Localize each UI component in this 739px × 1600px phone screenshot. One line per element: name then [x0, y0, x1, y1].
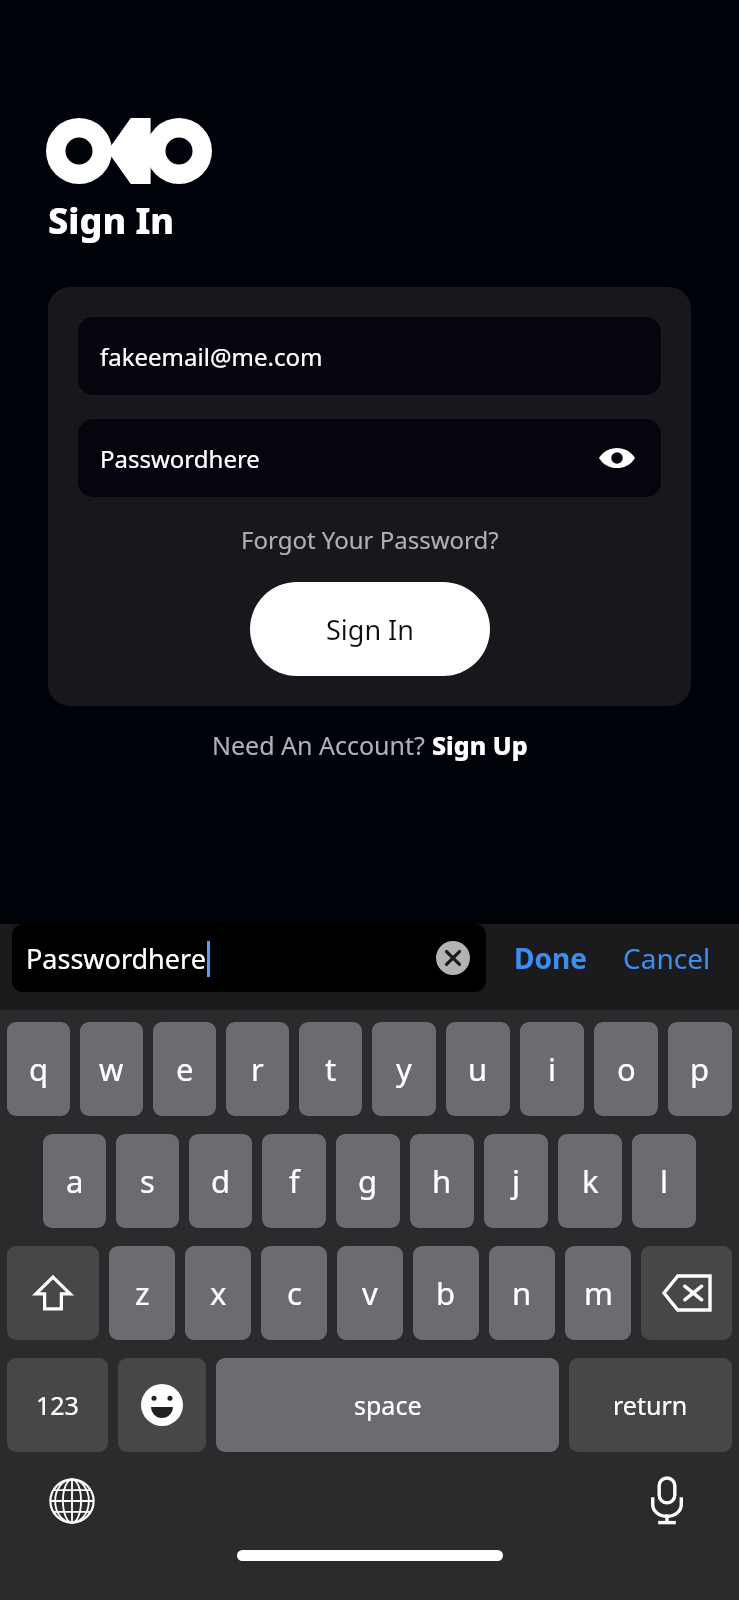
staticText: c: [287, 1272, 302, 1314]
staticText: g: [358, 1160, 378, 1202]
button[interactable]: m: [565, 1246, 631, 1340]
staticText: v: [362, 1272, 378, 1314]
staticText: r: [251, 1048, 264, 1090]
button[interactable]: Passwordhere: [12, 924, 486, 992]
staticText: Forgot Your Password?: [241, 523, 499, 556]
staticText: y: [396, 1048, 412, 1090]
staticText: Need An Account?: [212, 728, 432, 762]
button[interactable]: t: [299, 1022, 362, 1116]
button[interactable]: i: [520, 1022, 584, 1116]
button[interactable]: o: [594, 1022, 658, 1116]
staticText: Sign In: [326, 611, 414, 648]
button[interactable]: d: [189, 1134, 252, 1228]
button[interactable]: v: [337, 1246, 403, 1340]
staticText: p: [690, 1048, 710, 1090]
button[interactable]: y: [372, 1022, 436, 1116]
button[interactable]: Need An Account?: [0, 728, 739, 762]
button[interactable]: Done: [504, 931, 597, 985]
staticText: j: [512, 1160, 520, 1202]
staticText: fakeemail@me.com: [100, 340, 323, 373]
button[interactable]: 123: [7, 1358, 108, 1452]
staticText: return: [613, 1388, 688, 1422]
button[interactable]: space: [216, 1358, 559, 1452]
button[interactable]: k: [558, 1134, 622, 1228]
button[interactable]: l: [632, 1134, 696, 1228]
staticText: Passwordhere: [26, 940, 206, 977]
staticText: Cancel: [623, 939, 711, 977]
staticText: b: [436, 1272, 456, 1314]
staticText: e: [176, 1048, 194, 1090]
button[interactable]: b: [413, 1246, 479, 1340]
button[interactable]: g: [336, 1134, 400, 1228]
button[interactable]: s: [116, 1134, 179, 1228]
button[interactable]: Backspace: [641, 1246, 732, 1340]
staticText: x: [210, 1272, 227, 1314]
button[interactable]: j: [484, 1134, 548, 1228]
staticText: t: [325, 1048, 337, 1090]
button[interactable]: Cancel: [613, 931, 721, 985]
button[interactable]: h: [410, 1134, 474, 1228]
staticText: n: [512, 1272, 532, 1314]
button[interactable]: Passwordhere: [78, 419, 661, 497]
button[interactable]: Shift: [7, 1246, 99, 1340]
staticText: f: [289, 1160, 300, 1202]
button[interactable]: q: [7, 1022, 70, 1116]
button[interactable]: e: [153, 1022, 216, 1116]
staticText: h: [432, 1160, 452, 1202]
staticText: s: [140, 1160, 155, 1202]
staticText: Sign Up: [432, 728, 528, 762]
button[interactable]: Show password: [595, 436, 639, 480]
staticText: k: [582, 1160, 599, 1202]
button[interactable]: u: [446, 1022, 510, 1116]
button[interactable]: f: [262, 1134, 326, 1228]
staticText: i: [548, 1048, 556, 1090]
staticText: z: [135, 1272, 150, 1314]
button[interactable]: a: [43, 1134, 106, 1228]
staticText: a: [66, 1160, 84, 1202]
button[interactable]: Dictation: [639, 1473, 695, 1529]
staticText: u: [468, 1048, 488, 1090]
button[interactable]: Clear text: [434, 939, 472, 977]
button[interactable]: w: [80, 1022, 143, 1116]
staticText: w: [99, 1048, 124, 1090]
staticText: 123: [36, 1388, 79, 1422]
button[interactable]: c: [261, 1246, 327, 1340]
button[interactable]: n: [489, 1246, 555, 1340]
staticText: Passwordhere: [100, 442, 260, 475]
button[interactable]: Sign In: [250, 582, 490, 676]
staticText: space: [354, 1388, 422, 1422]
staticText: d: [211, 1160, 231, 1202]
button[interactable]: r: [226, 1022, 289, 1116]
staticText: q: [29, 1048, 49, 1090]
staticText: Sign In: [48, 196, 175, 245]
staticText: m: [584, 1272, 613, 1314]
staticText: Done: [514, 939, 587, 977]
button[interactable]: x: [185, 1246, 251, 1340]
button[interactable]: Forgot Your Password?: [78, 523, 661, 556]
button[interactable]: Emoji: [118, 1358, 206, 1452]
button[interactable]: fakeemail@me.com: [78, 317, 661, 395]
staticText: l: [660, 1160, 668, 1202]
button[interactable]: p: [668, 1022, 732, 1116]
button[interactable]: z: [109, 1246, 175, 1340]
button[interactable]: Change keyboard language: [44, 1473, 100, 1529]
staticText: o: [617, 1048, 636, 1090]
button[interactable]: return: [569, 1358, 732, 1452]
